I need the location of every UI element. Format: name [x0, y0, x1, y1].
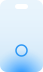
button[interactable]: Record — [16, 45, 27, 56]
button[interactable]: Status pill — [15, 4, 28, 9]
